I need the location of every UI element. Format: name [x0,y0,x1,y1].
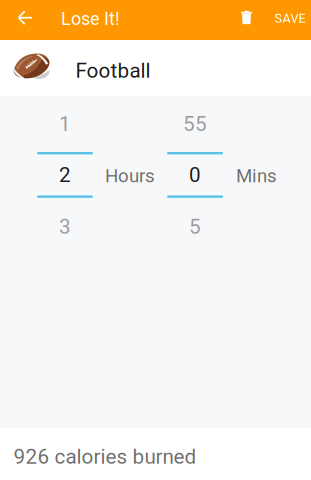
staticText: Lose It! [61,8,120,29]
staticText: 926 calories burned [13,445,196,469]
staticText: 5 [189,215,201,239]
staticText: Mins [236,165,277,187]
button[interactable]: SAVE [267,0,311,38]
staticText: 0 [189,163,201,187]
staticText: 55 [183,112,207,136]
staticText: Hours [105,165,155,187]
staticText: Football [75,58,150,83]
staticText: 2 [59,163,71,187]
staticText: 3 [59,215,71,239]
staticText: SAVE [274,11,305,26]
button[interactable]: Back [5,0,45,38]
staticText: 1 [59,112,71,136]
button[interactable]: Delete [232,0,260,37]
